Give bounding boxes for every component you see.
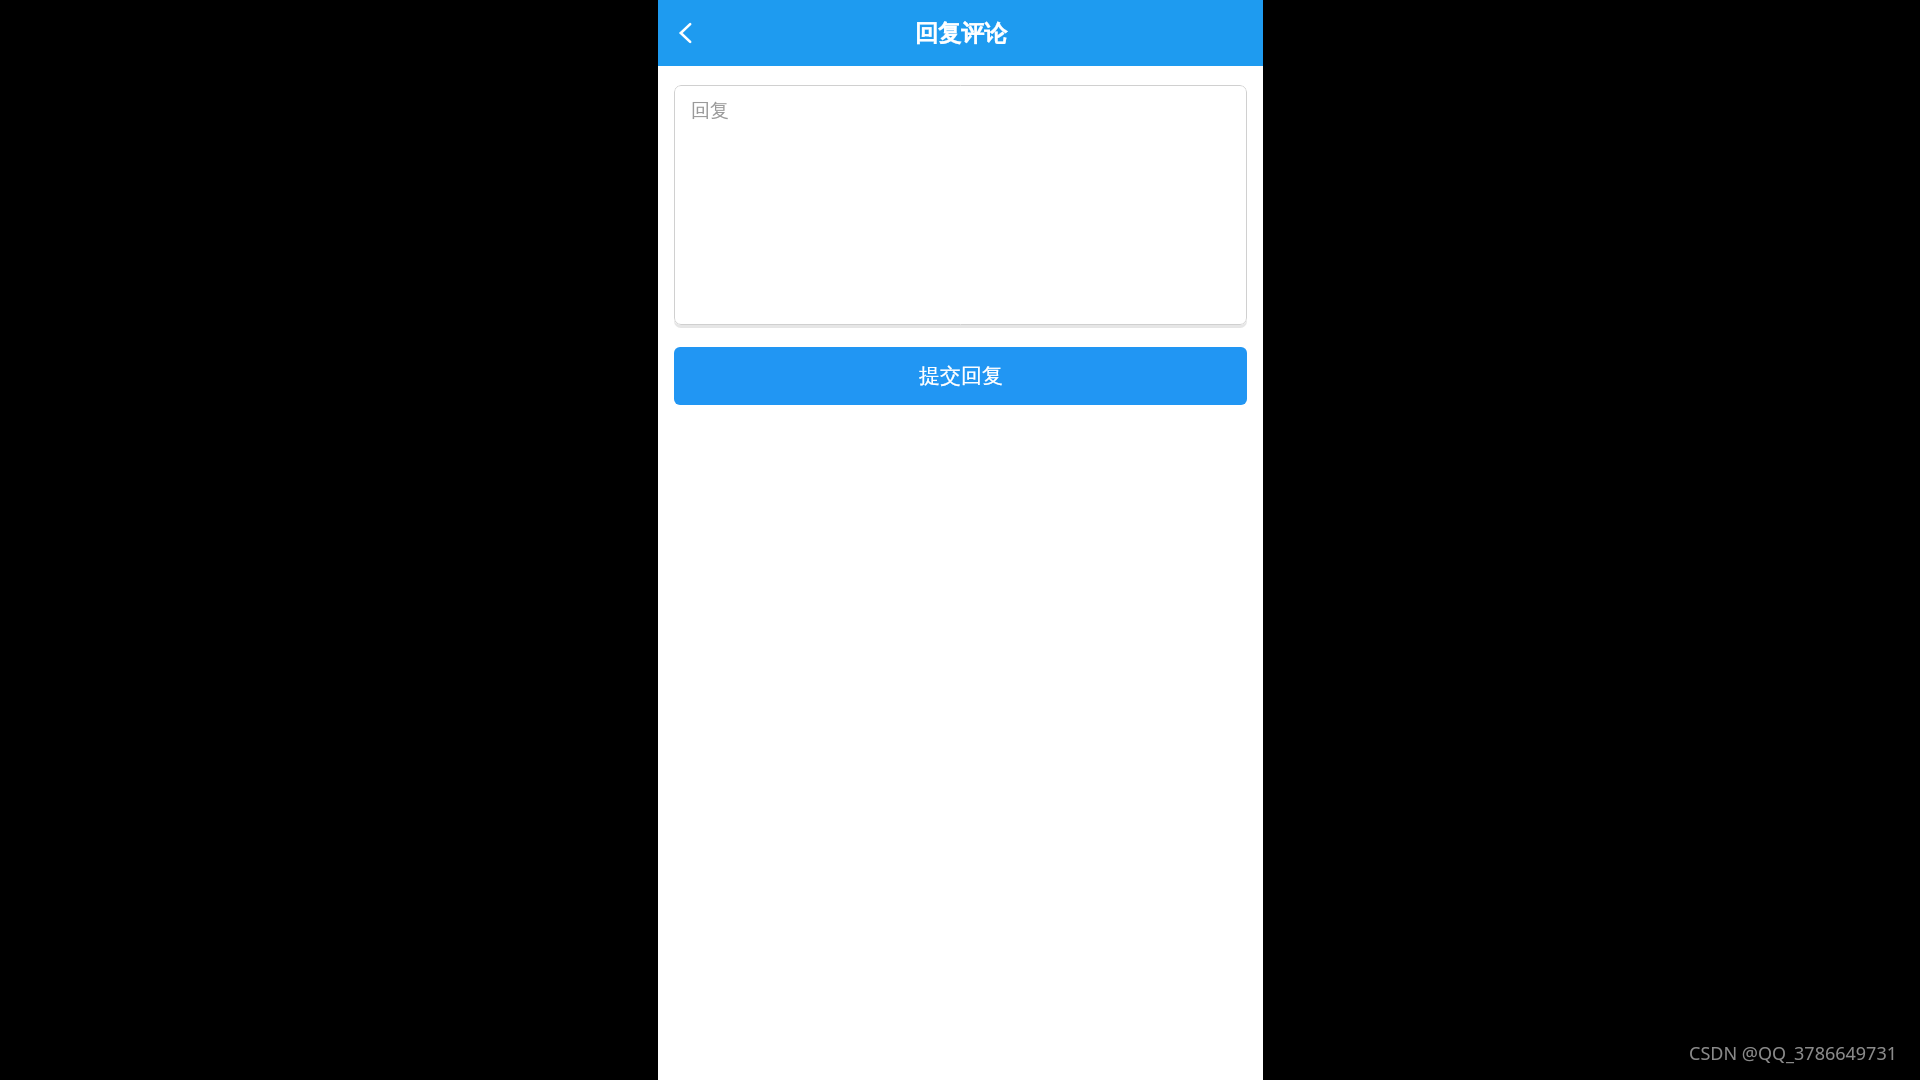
button[interactable]: 提交回复 [674, 347, 1247, 405]
staticText: CSDN @QQ_3786649731 [1689, 1041, 1898, 1066]
button[interactable]: Back [658, 5, 714, 61]
staticText: 提交回复 [919, 363, 1003, 389]
staticText: 回复 [691, 99, 729, 123]
staticText: 回复评论 [915, 19, 1007, 48]
button[interactable]: 回复 [674, 85, 1247, 325]
